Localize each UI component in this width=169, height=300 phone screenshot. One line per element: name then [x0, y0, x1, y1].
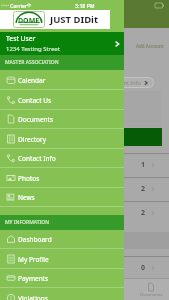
staticText: Carrier: [10, 2, 28, 9]
staticText: Directory: [18, 135, 47, 144]
staticText: Photos: [18, 174, 40, 183]
staticText: 1: [141, 160, 146, 170]
staticText: 2: [141, 208, 146, 218]
staticText: DOME: [18, 16, 40, 26]
button[interactable]: Contact Info: [0, 148, 124, 168]
button[interactable]: Contact Us: [0, 90, 124, 110]
staticText: 1234 Testing Street: [6, 45, 60, 53]
button[interactable]: Payments: [0, 268, 124, 288]
staticText: 3:18 PM: [75, 2, 95, 9]
staticText: JUST DIDit: [50, 13, 99, 26]
button[interactable]: Photos: [0, 168, 124, 188]
button[interactable]: Dashboard: [0, 229, 124, 249]
button[interactable]: Account Info: [74, 77, 154, 88]
staticText: MASTER ASSOCIATION: [5, 59, 59, 66]
button[interactable]: My Profile: [0, 249, 124, 269]
staticText: Violations: [18, 294, 48, 300]
staticText: Contact Us: [18, 96, 52, 105]
staticText: Calendar: [18, 76, 46, 85]
staticText: Add Account: [136, 43, 164, 49]
staticText: My Profile: [18, 255, 49, 264]
staticText: Contact Info: [18, 154, 56, 163]
staticText: Test User: [6, 34, 36, 43]
button[interactable]: 0: [0, 256, 169, 279]
staticText: Documents: [140, 292, 163, 298]
button[interactable]: Directory: [0, 129, 124, 149]
staticText: Documents: [18, 115, 54, 124]
button[interactable]: Documents: [0, 109, 124, 129]
button[interactable]: 1: [0, 153, 169, 176]
staticText: Dashboard: [18, 235, 52, 244]
button[interactable]: News: [0, 187, 124, 207]
staticText: Account Info: [108, 79, 141, 86]
staticText: Payments: [18, 274, 49, 283]
staticText: News: [18, 193, 35, 202]
button[interactable]: 2: [0, 177, 169, 200]
staticText: 0: [141, 263, 146, 273]
button[interactable]: Documents tab: [131, 283, 169, 300]
button[interactable]: Test User: [0, 32, 124, 55]
button[interactable]: 2: [0, 201, 169, 224]
staticText: 2: [141, 184, 146, 194]
button[interactable]: Calendar: [0, 70, 124, 90]
staticText: MY INFORMATION: [5, 219, 50, 226]
button[interactable]: Violations: [0, 288, 124, 300]
